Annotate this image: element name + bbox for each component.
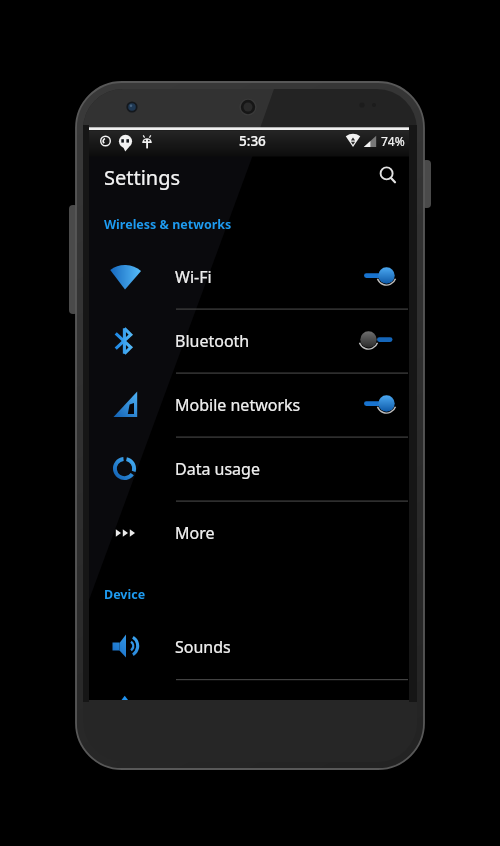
button[interactable] [358,262,402,290]
button[interactable] [89,309,409,373]
staticText: More [175,522,215,544]
staticText: Bluetooth [175,330,250,352]
button[interactable] [89,437,409,501]
staticText: 74% [381,133,405,149]
staticText: Device [104,586,146,603]
button[interactable] [358,390,402,418]
button[interactable] [89,245,409,309]
button[interactable] [89,615,409,679]
staticText: Settings [104,164,181,191]
button[interactable] [89,501,409,565]
staticText: Sounds [175,636,231,658]
staticText: Data usage [175,458,260,480]
button[interactable] [374,161,400,187]
button[interactable] [358,326,402,354]
staticText: Wireless & networks [104,216,232,233]
button[interactable] [89,373,409,437]
staticText: Wi-Fi [175,266,212,288]
staticText: 5:36 [239,132,266,150]
staticText: Mobile networks [175,394,301,416]
